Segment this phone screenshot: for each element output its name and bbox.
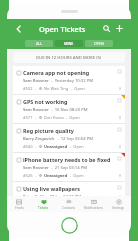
button[interactable]: Back [12, 22, 25, 35]
staticText: Unassigned [44, 173, 68, 178]
staticText: Unassigned [44, 144, 68, 149]
staticText: - 21 Sep 03:14 PM [49, 165, 88, 171]
staticText: Sam Rossner [23, 78, 49, 84]
staticText: Tickets [38, 206, 49, 210]
staticText: #526 [23, 173, 33, 178]
staticText: Contacts [62, 206, 76, 210]
staticText: - Open [71, 86, 85, 91]
staticText: Dori Evans [44, 115, 64, 120]
staticText: GPS not working [23, 98, 68, 105]
button[interactable]: Settings [106, 196, 131, 212]
staticText: iPhone battery needs to be fixed [23, 156, 111, 163]
button[interactable]: Camera app not opening [13, 66, 125, 95]
staticText: ALL [36, 41, 43, 46]
button[interactable]: Reg picture quality [13, 124, 125, 153]
staticText: #540 [23, 144, 33, 149]
staticText: - 16 Nov 08:20 PM [49, 107, 88, 113]
button[interactable]: Add ticket [113, 22, 126, 35]
staticText: - [35, 115, 37, 120]
button[interactable]: ALL [25, 40, 53, 47]
staticText: - Open [70, 144, 84, 149]
staticText: OPEN [94, 41, 104, 46]
button[interactable]: Tickets [31, 196, 56, 212]
staticText: DUE IN 12 HOURS AND MORE (5) [36, 55, 102, 61]
button[interactable]: OPEN [85, 40, 113, 47]
staticText: Settings [112, 206, 125, 210]
staticText: - [35, 86, 37, 91]
staticText: No Wait Ting [44, 86, 69, 91]
staticText: Feeds [15, 206, 24, 210]
button[interactable]: Using live wallpapers [13, 182, 125, 196]
staticText: MINE [64, 41, 74, 46]
staticText: - [35, 173, 37, 178]
staticText: - Open [66, 115, 80, 120]
staticText: Barry Zingovich [23, 136, 55, 142]
button[interactable]: Notifications [81, 196, 106, 212]
staticText: Sam Rossner [23, 165, 49, 171]
staticText: Sam Rossner [23, 107, 49, 113]
staticText: Reg picture quality [23, 127, 74, 134]
staticText: Using live wallpapers [23, 185, 81, 192]
staticText: Open Tickets [39, 24, 86, 34]
button[interactable]: iPhone battery needs to be fixed [13, 153, 125, 182]
button[interactable]: Contacts [56, 196, 81, 212]
staticText: Peter Graf [23, 194, 44, 196]
button[interactable]: GPS not working [13, 95, 125, 124]
staticText: - [35, 144, 37, 149]
staticText: - Open [70, 173, 84, 178]
button[interactable]: Search [100, 22, 113, 35]
staticText: - Yesterday 10:32 PM [49, 78, 94, 84]
staticText: Camera app not opening [23, 69, 90, 76]
staticText: Notifications [84, 206, 103, 210]
button[interactable]: MINE [55, 40, 83, 47]
staticText: #571 [23, 115, 33, 120]
staticText: - 12 Sep 03:04 PM [55, 136, 94, 142]
button[interactable]: Feeds [7, 196, 31, 212]
staticText: #502 [23, 86, 33, 91]
staticText: - 07 Jun 12:52 PM [44, 194, 82, 196]
